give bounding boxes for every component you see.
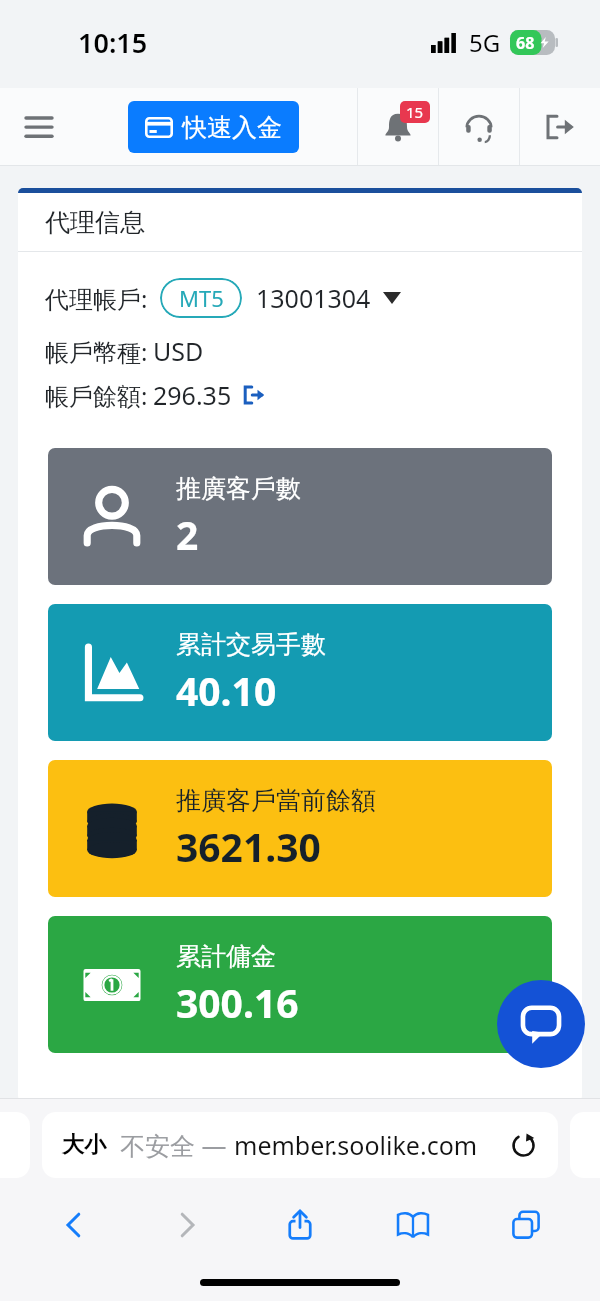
button[interactable]: Support: [439, 88, 519, 166]
staticText: 296.35: [153, 378, 232, 412]
staticText: 5G: [469, 26, 501, 59]
button[interactable]: 累計傭金: [48, 916, 552, 1053]
button[interactable]: 代理帳戶:: [45, 278, 401, 318]
button[interactable]: Log out: [520, 88, 600, 166]
staticText: 推廣客戶當前餘額: [176, 785, 376, 816]
button[interactable]: Reload: [508, 1130, 538, 1160]
staticText: 累計交易手數: [176, 629, 326, 660]
staticText: 推廣客戶數: [176, 473, 301, 504]
button[interactable]: 累計交易手數: [48, 604, 552, 741]
staticText: 300.16: [176, 976, 299, 1029]
button[interactable]: Bookmarks: [374, 1196, 452, 1254]
staticText: 2: [176, 508, 199, 561]
button[interactable]: 推廣客戶數: [48, 448, 552, 585]
staticText: 13001304: [256, 281, 371, 315]
staticText: 帳戶餘額:: [45, 379, 148, 412]
staticText: 40.10: [176, 664, 277, 717]
button[interactable]: Tabs: [487, 1196, 565, 1254]
staticText: 累計傭金: [176, 941, 276, 972]
button[interactable]: Back: [35, 1196, 113, 1254]
staticText: USD: [153, 334, 204, 368]
button[interactable]: 推廣客戶當前餘額: [48, 760, 552, 897]
staticText: MT5: [179, 283, 224, 313]
staticText: 大小: [62, 1131, 106, 1159]
button[interactable]: Menu: [14, 102, 64, 152]
button[interactable]: Share: [261, 1196, 339, 1254]
staticText: 不安全 —: [120, 1128, 227, 1162]
staticText: 快速入金: [182, 112, 282, 143]
button[interactable]: 大小: [42, 1112, 558, 1178]
staticText: member.soolike.com: [234, 1128, 478, 1162]
staticText: 10:15: [78, 24, 148, 61]
staticText: 3621.30: [176, 820, 321, 873]
button[interactable]: 快速入金: [128, 101, 299, 153]
staticText: 代理帳戶:: [45, 282, 148, 315]
staticText: 15: [406, 102, 424, 122]
button[interactable]: Notifications: [358, 88, 438, 166]
button[interactable]: Transfer funds: [242, 383, 266, 407]
staticText: 代理信息: [45, 207, 145, 238]
button[interactable]: Forward: [148, 1196, 226, 1254]
staticText: 68: [516, 32, 535, 54]
staticText: 帳戶幣種:: [45, 335, 148, 368]
button[interactable]: Open chat: [497, 980, 585, 1068]
